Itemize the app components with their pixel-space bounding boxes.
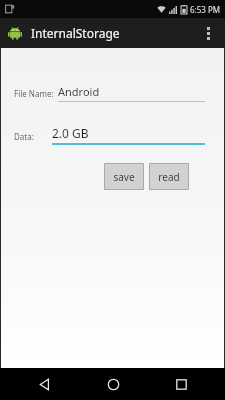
staticText: Data: <box>14 131 34 142</box>
staticText: InternalStorage <box>31 25 120 41</box>
staticText: save <box>113 170 135 184</box>
staticText: read <box>158 170 180 184</box>
staticText: Android <box>58 84 100 99</box>
staticText: 2.0 GB <box>52 125 89 141</box>
button[interactable]: Back <box>19 368 69 400</box>
button[interactable]: Android <box>58 84 205 102</box>
button[interactable]: Recent apps <box>156 368 206 400</box>
button[interactable]: Home <box>88 368 138 400</box>
staticText: File Name: <box>14 88 54 99</box>
button[interactable]: More options <box>198 18 218 48</box>
button[interactable]: save <box>105 164 143 189</box>
button[interactable]: 2.0 GB <box>52 125 205 145</box>
staticText: 6:53 PM <box>190 4 221 15</box>
button[interactable]: read <box>150 164 188 189</box>
